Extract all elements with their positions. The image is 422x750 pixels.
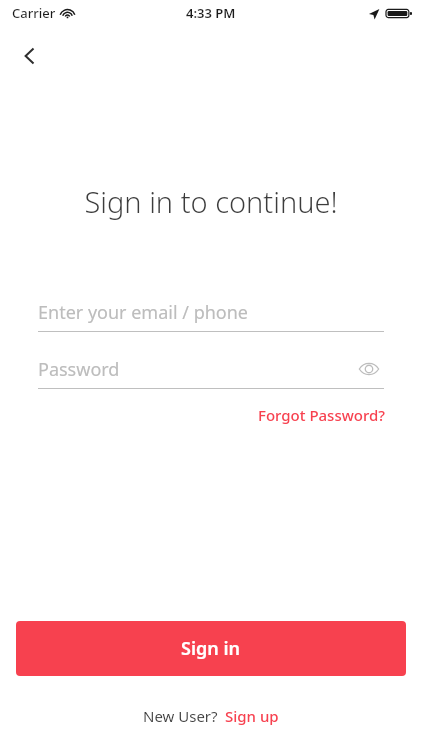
staticText: Enter your email / phone [38,300,248,325]
button[interactable]: Password [38,350,384,389]
other: Show password [354,354,384,384]
button[interactable]: Forgot Password? [256,401,388,429]
staticText: Sign in to continue! [0,182,422,221]
staticText: New User? [143,706,218,726]
staticText: Forgot Password? [258,405,386,425]
button[interactable]: Sign up [225,706,279,726]
staticText: Sign up [225,706,279,726]
staticText: Password [38,357,120,382]
button[interactable]: Enter your email / phone [38,293,384,332]
button[interactable]: Sign in [16,621,406,676]
staticText: Carrier [12,4,56,22]
staticText: Sign in [181,636,241,661]
staticText: 4:33 PM [186,4,236,22]
button[interactable]: Back [8,34,52,78]
